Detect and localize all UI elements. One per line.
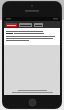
button[interactable]: Messages — [19, 23, 32, 27]
button[interactable]: Home — [29, 99, 36, 106]
button[interactable]: Detail — [34, 23, 43, 27]
button[interactable] — [8, 90, 56, 95]
button[interactable] — [6, 30, 58, 43]
button[interactable]: Brand logo — [6, 23, 17, 27]
